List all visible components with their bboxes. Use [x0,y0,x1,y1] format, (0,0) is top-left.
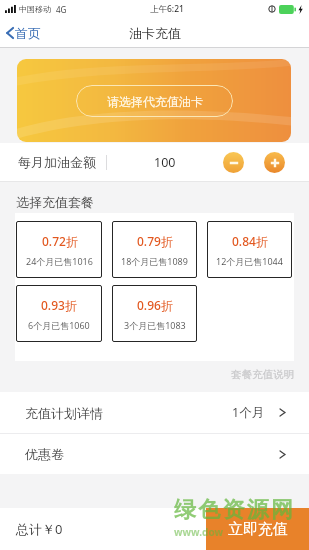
staticText: 总计￥0 [16,520,63,538]
staticText: 首页 [15,25,41,41]
staticText: 绿色资源网 [173,496,294,524]
staticText: 套餐充值说明 [0,368,294,381]
button[interactable]: 充值计划详情 [0,392,309,433]
button[interactable]: 0.84折 [207,221,292,278]
staticText: www.dow [174,525,224,539]
staticText: 每月加油金额 [18,154,96,170]
staticText: 上午6:21 [150,3,184,15]
button[interactable]: 优惠卷 [0,434,309,474]
button[interactable]: 0.72折 [16,221,102,278]
button[interactable]: 0.79折 [112,221,197,278]
button[interactable]: Decrease amount [223,152,244,173]
staticText: 12个月已售1044 [216,255,283,267]
staticText: 6个月已售1060 [28,319,90,331]
staticText: 充值计划详情 [25,405,103,421]
button[interactable]: 0.93折 [16,285,102,342]
staticText: 0.84折 [232,233,268,249]
staticText: 中国移动 [19,4,51,14]
button[interactable]: 请选择代充值油卡 [76,85,233,117]
staticText: 100 [154,154,176,171]
staticText: 24个月已售1016 [26,255,93,267]
staticText: 0.79折 [137,233,173,249]
staticText: 4G [56,4,67,15]
staticText: 优惠卷 [25,446,64,462]
staticText: 选择充值套餐 [16,194,94,210]
button[interactable]: 0.96折 [112,285,197,342]
staticText: 0.93折 [41,297,77,313]
staticText: 0.72折 [42,233,78,249]
staticText: 18个月已售1089 [121,255,188,267]
staticText: 立即充值 [228,520,288,539]
button[interactable]: 立即充值 [206,508,309,550]
staticText: 油卡充值 [129,25,181,41]
staticText: 请选择代充值油卡 [107,94,203,109]
button[interactable]: 请选择代充值油卡 [17,59,291,142]
staticText: 1个月 [232,404,265,421]
staticText: 3个月已售1083 [124,319,186,331]
staticText: 0.96折 [137,297,173,313]
button[interactable]: 首页 [4,22,43,44]
button[interactable]: Increase amount [264,152,285,173]
